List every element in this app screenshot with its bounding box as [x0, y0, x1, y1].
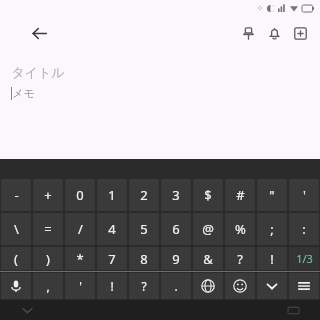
button[interactable]: =	[33, 213, 63, 245]
staticText: /	[78, 220, 83, 238]
button[interactable]: :	[289, 213, 319, 245]
button[interactable]: '	[65, 273, 95, 299]
button[interactable]: 9	[161, 247, 191, 270]
staticText: -	[14, 186, 19, 204]
staticText: +	[44, 186, 52, 204]
staticText: タイトル	[11, 64, 65, 80]
staticText: $	[204, 186, 212, 204]
button[interactable]: Archive	[287, 20, 313, 46]
button[interactable]: 2	[129, 179, 159, 211]
button[interactable]: ?	[225, 247, 255, 270]
staticText: メモ	[12, 86, 35, 100]
button[interactable]: ,	[33, 273, 63, 299]
button[interactable]: ;	[257, 213, 287, 245]
button[interactable]: -	[1, 179, 31, 211]
button[interactable]: @	[193, 213, 223, 245]
button[interactable]: (	[1, 247, 31, 270]
button[interactable]: 1	[97, 179, 127, 211]
button[interactable]: Voice input	[1, 273, 31, 299]
button[interactable]: !	[257, 247, 287, 270]
button[interactable]: Language	[193, 273, 223, 299]
button[interactable]: ?	[129, 273, 159, 299]
staticText: *	[76, 250, 84, 268]
staticText: 8	[140, 250, 148, 268]
staticText: !	[270, 250, 274, 268]
staticText: ,	[46, 278, 50, 294]
staticText: @	[202, 220, 214, 238]
button[interactable]: )	[33, 247, 63, 270]
staticText: :	[302, 220, 306, 238]
staticText: 0	[76, 186, 84, 204]
staticText: 9	[172, 250, 180, 268]
button[interactable]: *	[65, 247, 95, 270]
button[interactable]: \	[1, 213, 31, 245]
button[interactable]: #	[225, 179, 255, 211]
button[interactable]: 3	[161, 179, 191, 211]
staticText: 6	[172, 220, 180, 238]
staticText: (	[14, 250, 18, 268]
button[interactable]: 5	[129, 213, 159, 245]
button[interactable]: Back	[19, 302, 35, 318]
staticText: #	[236, 186, 245, 204]
button[interactable]: Emoji	[225, 273, 255, 299]
staticText: &	[203, 250, 213, 268]
button[interactable]: 7	[97, 247, 127, 270]
staticText: ;	[270, 220, 274, 238]
button[interactable]: Hide keyboard	[257, 273, 287, 299]
staticText: 5	[140, 220, 148, 238]
button[interactable]: Pin	[235, 20, 261, 46]
button[interactable]: /	[65, 213, 95, 245]
staticText: "	[269, 186, 275, 204]
button[interactable]: .	[161, 273, 191, 299]
button[interactable]: 1/3	[289, 247, 319, 270]
staticText: 7	[108, 250, 116, 268]
staticText: \	[14, 220, 19, 238]
button[interactable]: Reminder	[261, 20, 287, 46]
staticText: 3	[172, 186, 180, 204]
button[interactable]: 4	[97, 213, 127, 245]
staticText: ?	[141, 278, 147, 294]
button[interactable]: Back	[26, 20, 52, 46]
staticText: ?	[237, 250, 243, 268]
staticText: .	[174, 278, 178, 294]
staticText: '	[79, 278, 82, 294]
staticText: %	[235, 220, 246, 238]
staticText: !	[110, 278, 114, 294]
staticText: )	[46, 250, 50, 268]
staticText: 1	[108, 186, 116, 204]
button[interactable]: %	[225, 213, 255, 245]
button[interactable]: $	[193, 179, 223, 211]
staticText: 4	[108, 220, 116, 238]
button[interactable]: Keyboard settings	[289, 273, 319, 299]
staticText: 2	[140, 186, 148, 204]
staticText: 1/3	[296, 251, 313, 266]
button[interactable]: 0	[65, 179, 95, 211]
button[interactable]: 6	[161, 213, 191, 245]
button[interactable]: Switch keyboard	[285, 302, 301, 318]
button[interactable]: "	[257, 179, 287, 211]
staticText: =	[44, 220, 52, 238]
button[interactable]: 8	[129, 247, 159, 270]
staticText: '	[303, 186, 306, 204]
button[interactable]: '	[289, 179, 319, 211]
button[interactable]: &	[193, 247, 223, 270]
button[interactable]: !	[97, 273, 127, 299]
button[interactable]: +	[33, 179, 63, 211]
